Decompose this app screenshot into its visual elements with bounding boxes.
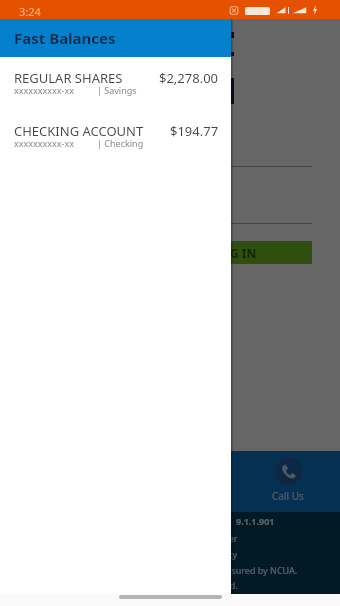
staticText: $194.77 <box>170 122 219 140</box>
button[interactable]: Rates <box>117 451 235 512</box>
button[interactable]: Call Us <box>235 451 340 512</box>
staticText: REGULAR SHARES <box>14 69 123 87</box>
staticText: Federally insured by NCUA. <box>183 564 298 576</box>
staticText: Fast Balances <box>14 28 116 48</box>
staticText: Copyright 2021 All rights reserved. <box>92 579 238 591</box>
staticText: 9.1.1.901 <box>236 515 275 527</box>
button[interactable]: LOG IN <box>26 241 312 264</box>
staticText: Call Us <box>272 489 304 503</box>
staticText: $2,278.00 <box>159 69 219 87</box>
staticText: CHECKING ACCOUNT <box>14 122 144 140</box>
staticText: LOG IN <box>214 245 257 261</box>
staticText: Routing Number: 301081508 Member <box>75 532 238 544</box>
staticText: NMLS ID #000000 Privacy Policy <box>100 548 238 560</box>
staticText: | Checking <box>97 137 144 149</box>
staticText: xxxxxxxxxx-xx <box>14 137 75 149</box>
button[interactable]: REGULAR SHARES <box>0 69 231 99</box>
staticText: 3:24 <box>19 4 41 19</box>
staticText: | Savings <box>97 84 137 96</box>
staticText: xxxxxxxxxx-xx <box>14 84 75 96</box>
button[interactable]: CHECKING ACCOUNT <box>0 122 231 152</box>
